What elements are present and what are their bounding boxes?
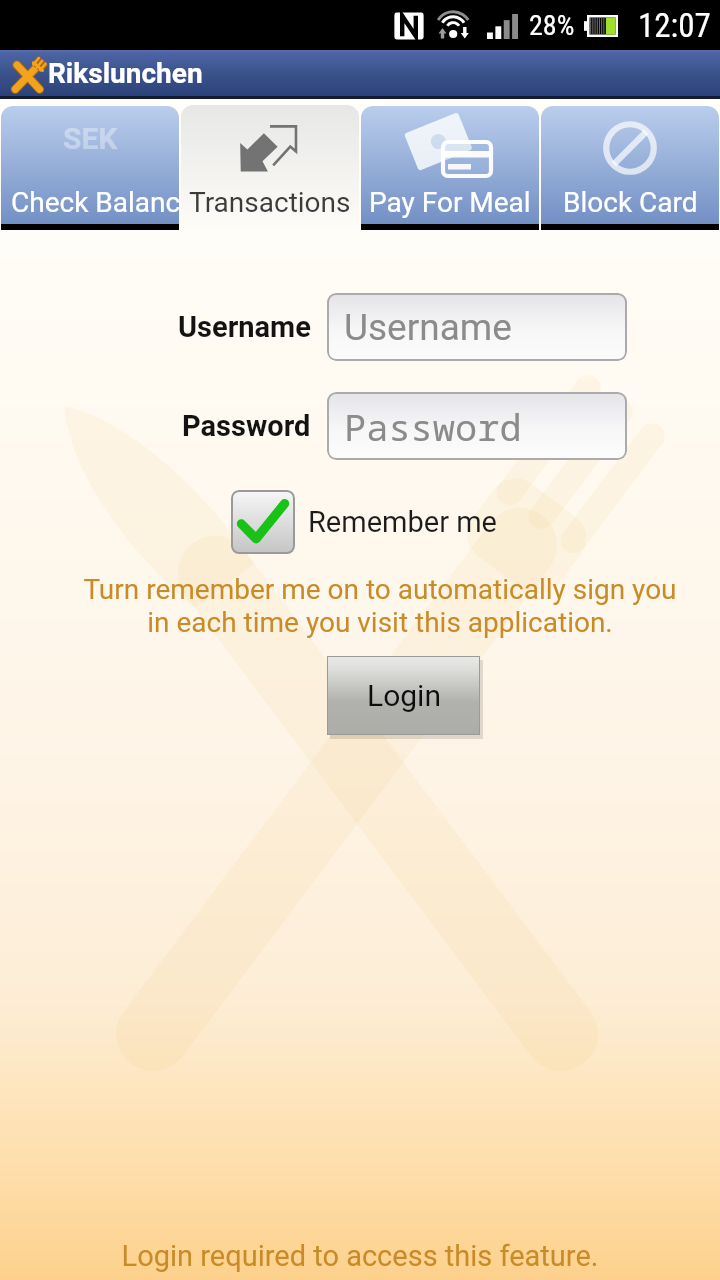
staticText: Username (344, 306, 512, 349)
staticText: Password (344, 401, 522, 451)
staticText: SEK (63, 121, 118, 156)
button[interactable]: Password (327, 392, 627, 460)
button[interactable]: Remember me checkbox (231, 490, 295, 554)
staticText: Remember me (308, 505, 497, 539)
staticText: 28% (529, 9, 575, 42)
staticText: Password (182, 409, 311, 443)
staticText: Block Card (563, 186, 698, 219)
staticText: Pay For Meal (369, 186, 531, 219)
button[interactable]: Block Card (540, 99, 720, 230)
button[interactable]: SEK (0, 99, 180, 230)
button[interactable]: Pay For Meal (360, 99, 540, 230)
staticText: Username (178, 310, 311, 344)
staticText: Login (367, 678, 441, 713)
button[interactable]: Username (327, 293, 627, 361)
staticText: Rikslunchen (48, 57, 203, 90)
staticText: Turn remember me on to automatically sig… (74, 573, 686, 639)
button[interactable]: Login (327, 656, 480, 735)
staticText: 12:07 (638, 6, 711, 45)
staticText: Transactions (189, 186, 351, 219)
staticText: Login required to access this feature. (0, 1239, 720, 1273)
button[interactable]: Transactions (180, 99, 360, 230)
staticText: Check Balance (11, 186, 179, 219)
